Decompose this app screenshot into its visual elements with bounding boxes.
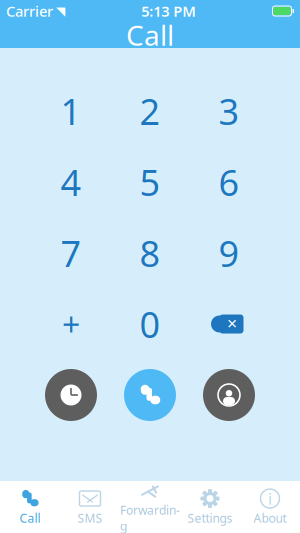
staticText: 5 [139, 158, 160, 206]
staticText: 8 [139, 229, 160, 277]
staticText: 6 [218, 158, 239, 206]
staticText: 4 [60, 158, 81, 206]
staticText: 1 [60, 87, 81, 135]
button[interactable]: Forwarding [120, 484, 180, 529]
button[interactable]: 6 [189, 152, 268, 212]
staticText: ◥ [56, 4, 65, 18]
button[interactable]: 0 [110, 294, 189, 354]
button[interactable]: i [240, 484, 300, 529]
staticText: 5:13 PM [141, 1, 196, 21]
staticText: Settings [187, 510, 232, 526]
button[interactable]: 9 [189, 223, 268, 283]
button[interactable]: 4 [31, 152, 110, 212]
staticText: 3 [218, 87, 239, 135]
button[interactable]: 📞 [0, 484, 60, 529]
button[interactable]: SMS [60, 484, 120, 529]
staticText: 0 [139, 300, 160, 348]
staticText: 9 [218, 229, 239, 277]
button[interactable]: 5 [110, 152, 189, 212]
button[interactable]: Contacts [189, 366, 268, 424]
staticText: About [253, 510, 286, 526]
button[interactable]: Settings [180, 484, 240, 529]
staticText: Call [126, 16, 174, 54]
staticText: Forwarding [120, 502, 180, 533]
button[interactable]: Recents [31, 366, 110, 424]
staticText: + [62, 303, 80, 345]
staticText: SMS [77, 510, 102, 526]
staticText: Call [19, 510, 40, 526]
staticText: 7 [60, 229, 81, 277]
staticText [53, 3, 56, 19]
staticText: i [268, 488, 272, 509]
button[interactable]: 8 [110, 223, 189, 283]
button[interactable]: 1 [31, 81, 110, 141]
button[interactable]: 7 [31, 223, 110, 283]
button[interactable]: 3 [189, 81, 268, 141]
button[interactable]: 2 [110, 81, 189, 141]
staticText: ✕ [226, 316, 237, 331]
button[interactable]: Call [110, 366, 189, 424]
staticText: 2 [139, 87, 160, 135]
button[interactable]: Delete [189, 294, 268, 354]
button[interactable]: + [31, 294, 110, 354]
staticText: Carrier [6, 1, 53, 21]
